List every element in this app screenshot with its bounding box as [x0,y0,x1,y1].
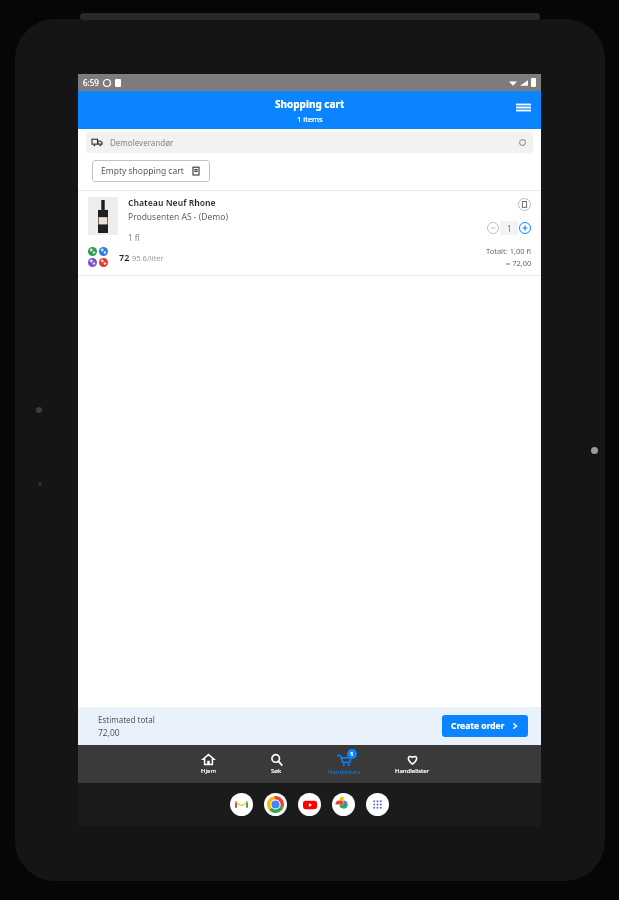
staticText: Handlelister [395,767,430,775]
button[interactable]: Søk [250,745,302,783]
button[interactable]: Demoleverandør [86,132,533,153]
staticText: Demoleverandør [110,137,174,148]
staticText: Produsenten AS - (Demo) [128,211,228,223]
button[interactable]: Shopping cart [78,91,541,129]
staticText: Create order [451,720,505,732]
staticText: Estimated total [98,714,155,725]
staticText: 72,00 [98,727,120,739]
staticText: Empty shopping cart [101,165,184,177]
button[interactable]: YouTube [298,793,321,816]
staticText: Søk [271,767,282,775]
button[interactable]: Increase quantity [518,221,532,235]
button[interactable]: Decrease quantity [486,221,500,235]
button[interactable]: Empty shopping cart [92,160,210,182]
button[interactable]: Chateau Neuf Rhone [78,191,541,275]
staticText: Hjem [201,767,216,775]
button[interactable]: Hjem [182,745,234,783]
staticText: 1 [507,223,512,234]
button[interactable]: Gmail [230,793,253,816]
button[interactable]: Photos [332,793,355,816]
staticText: 1 [350,750,354,758]
button[interactable]: Order note [517,197,532,212]
staticText: Handlekurv [328,768,361,776]
button[interactable]: All apps [366,793,389,816]
button[interactable]: Chrome [264,793,287,816]
button[interactable]: Handlelister [386,745,438,783]
staticText: = 72,00 [506,258,532,268]
button[interactable]: Create order [442,715,528,737]
button[interactable]: 1 [318,745,370,783]
staticText: 72 [119,251,130,263]
staticText: Shopping cart [275,97,345,111]
staticText: Chateau Neuf Rhone [128,197,216,209]
button[interactable]: Menu [512,96,534,118]
staticText: 95.6/liter [132,253,164,263]
staticText: 1 items [297,114,323,124]
staticText: 6:59 [83,77,99,88]
staticText: Totalt: 1,00 fl [486,246,532,256]
staticText: 1 fl [128,232,140,243]
